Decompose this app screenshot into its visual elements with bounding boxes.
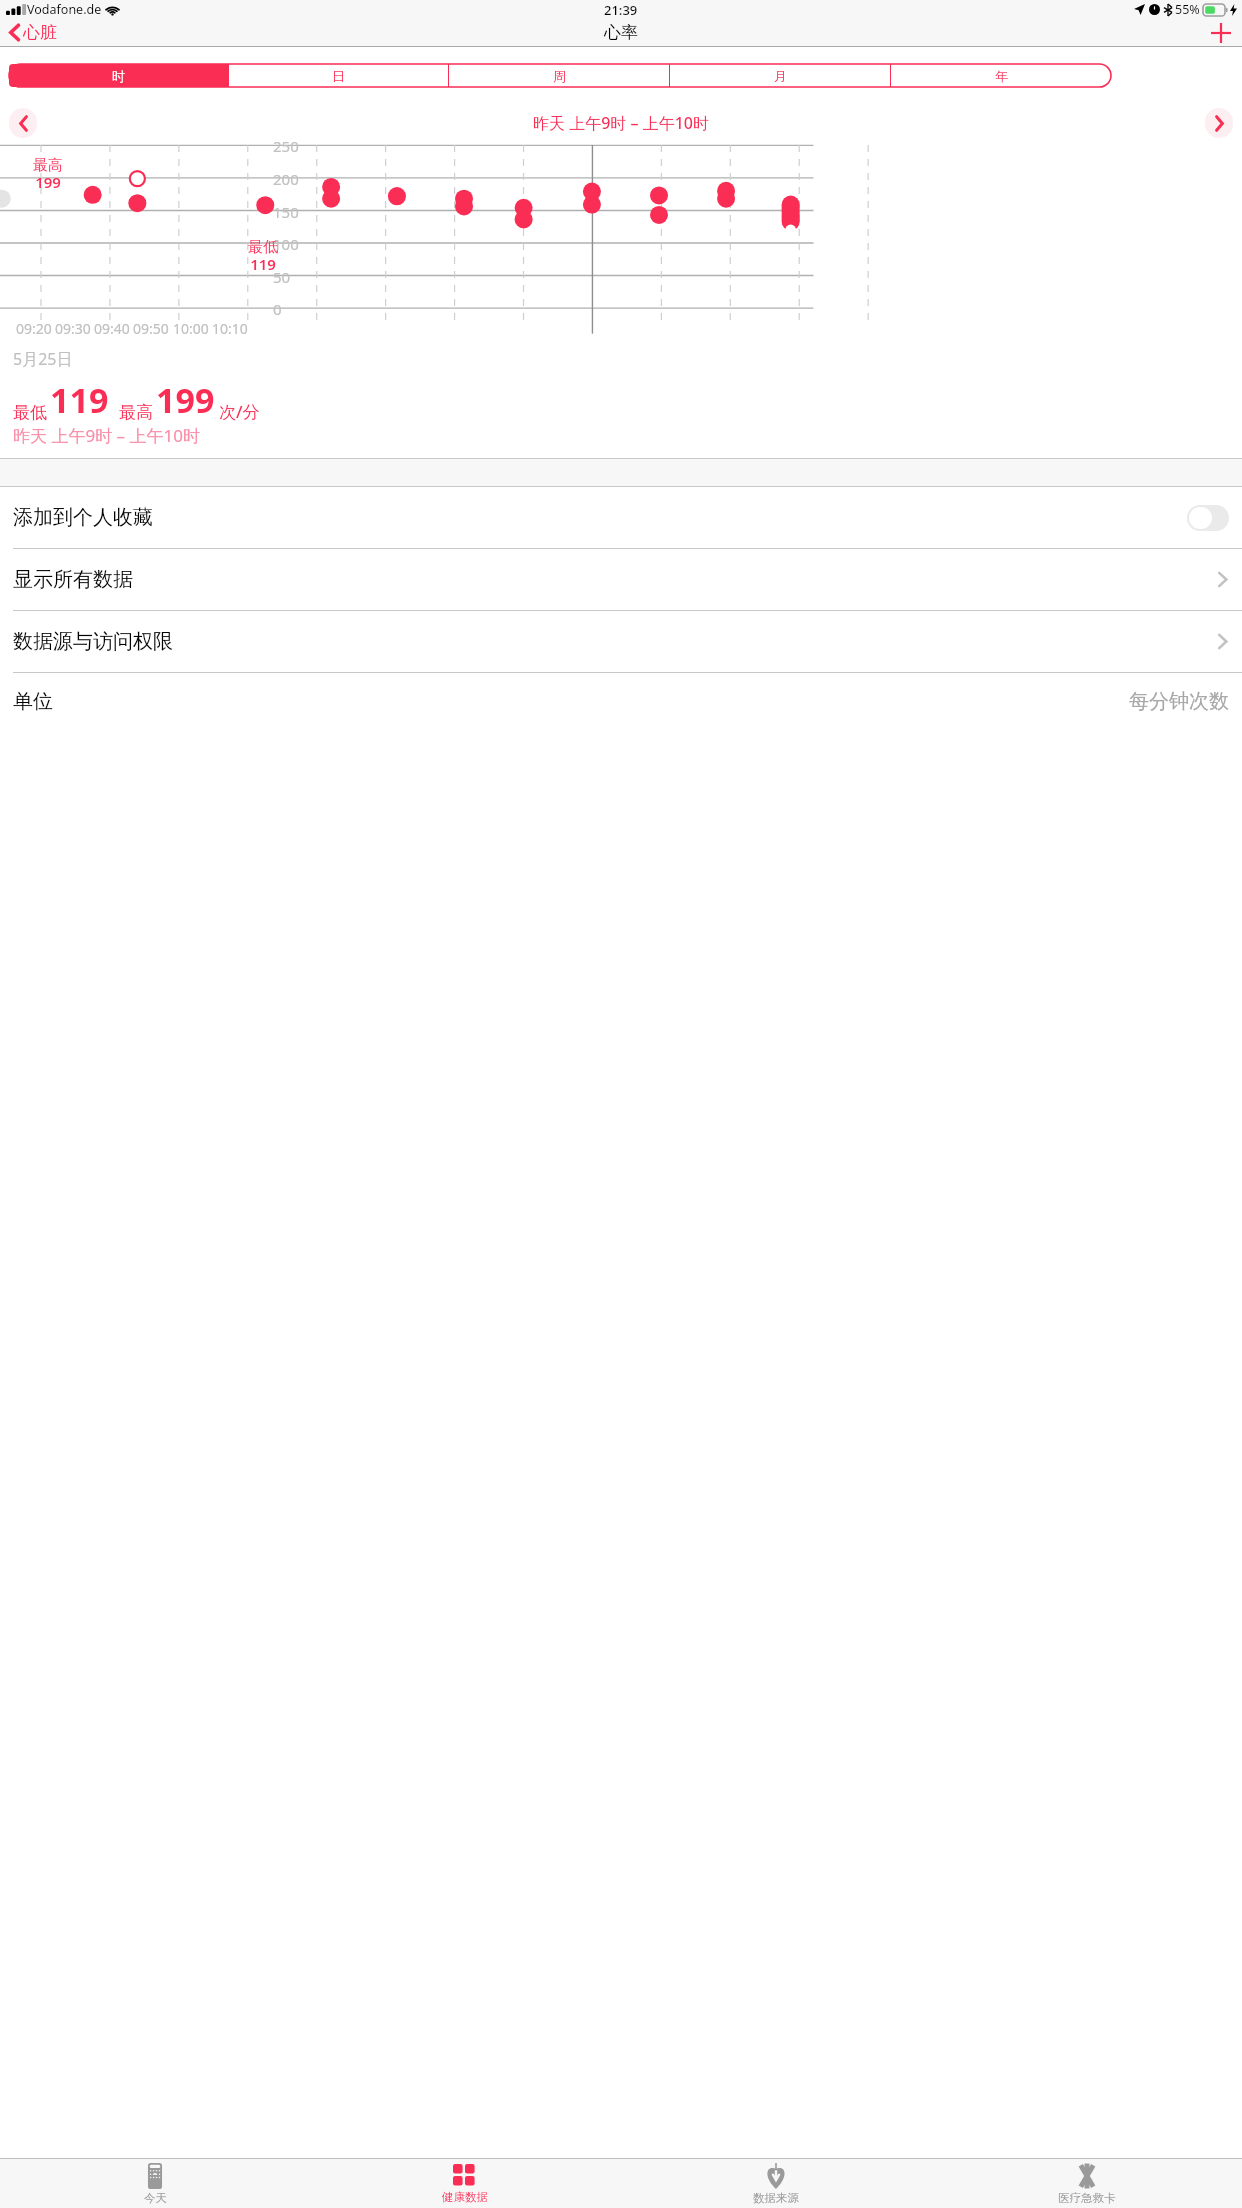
staticText: 昨天 上午9时 – 上午10时 bbox=[533, 112, 709, 134]
staticText: 150 bbox=[273, 202, 299, 222]
button[interactable]: Next bbox=[1205, 108, 1233, 138]
staticText: 100 bbox=[273, 234, 299, 254]
button[interactable]: 年 bbox=[891, 64, 1111, 87]
button[interactable]: 时 bbox=[9, 64, 228, 87]
staticText: 21:39 bbox=[604, 1, 638, 19]
staticText: 数据源与访问权限 bbox=[13, 629, 173, 654]
staticText: 199 bbox=[156, 377, 215, 423]
button[interactable]: Add bbox=[1200, 20, 1242, 46]
staticText: 周 bbox=[553, 68, 566, 84]
staticText: 添加到个人收藏 bbox=[13, 505, 153, 530]
staticText: 每分钟次数 bbox=[1129, 689, 1229, 714]
staticText: 200 bbox=[273, 169, 299, 189]
staticText: 55% bbox=[1175, 1, 1200, 18]
button[interactable]: 数据来源 bbox=[620, 2159, 931, 2208]
staticText: 09:50 bbox=[133, 319, 169, 338]
staticText: 09:30 bbox=[55, 319, 91, 338]
button[interactable]: 健康数据 bbox=[310, 2159, 620, 2208]
staticText: 119 bbox=[50, 377, 109, 423]
button[interactable]: 今天 bbox=[0, 2159, 310, 2208]
staticText: 5月25日 bbox=[13, 348, 73, 370]
staticText: 心率 bbox=[604, 22, 638, 43]
button[interactable]: 日 bbox=[229, 64, 448, 87]
staticText: 显示所有数据 bbox=[13, 567, 133, 592]
staticText: 09:40 bbox=[94, 319, 130, 338]
staticText: 单位 bbox=[13, 689, 53, 714]
staticText: 月 bbox=[774, 68, 787, 84]
staticText: 10:10 bbox=[212, 319, 248, 338]
staticText: 今天 bbox=[144, 2191, 167, 2205]
staticText: 0 bbox=[273, 299, 282, 319]
staticText: 时 bbox=[112, 68, 125, 84]
staticText: 昨天 上午9时 – 上午10时 bbox=[13, 424, 200, 447]
staticText: 健康数据 bbox=[442, 2190, 488, 2204]
staticText: 医疗急救卡 bbox=[1058, 2191, 1116, 2205]
staticText: 日 bbox=[332, 68, 345, 84]
staticText: 09:20 bbox=[16, 319, 52, 338]
button[interactable]: Previous bbox=[9, 108, 37, 138]
staticText: 最高 199 bbox=[33, 156, 63, 193]
button[interactable]: 心脏 bbox=[0, 20, 65, 45]
staticText: 年 bbox=[995, 68, 1008, 84]
button[interactable]: 单位 bbox=[0, 673, 1242, 729]
button[interactable]: Add to favourites toggle bbox=[1187, 505, 1229, 531]
staticText: 50 bbox=[273, 267, 291, 287]
staticText: 10:00 bbox=[173, 319, 209, 338]
button[interactable]: 周 bbox=[449, 64, 669, 87]
staticText: 最低 119 bbox=[248, 238, 278, 275]
staticText: 心脏 bbox=[23, 22, 57, 43]
button[interactable]: 月 bbox=[670, 64, 890, 87]
staticText: 250 bbox=[273, 136, 299, 156]
staticText: Vodafone.de bbox=[27, 1, 102, 18]
button[interactable]: 数据源与访问权限 bbox=[0, 611, 1242, 672]
button[interactable]: 医疗急救卡 bbox=[931, 2159, 1242, 2208]
staticText: 最低 bbox=[13, 402, 47, 423]
staticText: 数据来源 bbox=[753, 2191, 799, 2205]
staticText: 最高 bbox=[119, 402, 153, 423]
staticText: 次/分 bbox=[219, 400, 260, 423]
button[interactable]: 添加到个人收藏 bbox=[0, 487, 1242, 548]
button[interactable]: 显示所有数据 bbox=[0, 549, 1242, 610]
